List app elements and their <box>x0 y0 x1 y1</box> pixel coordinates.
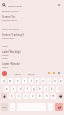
button[interactable]: f <box>25 86 30 92</box>
button[interactable]: w <box>8 78 13 84</box>
staticText: n <box>46 94 48 98</box>
button[interactable]: p <box>59 78 63 84</box>
button[interactable]: q <box>1 78 6 84</box>
button[interactable]: r <box>22 78 27 84</box>
staticText: y <box>36 79 38 83</box>
staticText: l <box>58 87 59 91</box>
button[interactable]: y <box>35 78 39 84</box>
staticText: g <box>33 87 35 91</box>
staticText: search term <box>8 4 23 7</box>
staticText: Worke <box>2 54 9 57</box>
button[interactable]: Screen Tracking S <box>0 33 64 40</box>
button[interactable]: l <box>56 86 60 92</box>
button[interactable]: i <box>47 78 51 84</box>
staticText: Screen Tracking S <box>2 33 25 37</box>
staticText: Recently Contact <box>2 10 19 13</box>
staticText: d <box>20 87 22 91</box>
button[interactable]: . <box>48 103 53 111</box>
staticText: Screen Tec <box>2 15 16 19</box>
button[interactable]: s <box>11 86 16 92</box>
staticText: Notes <box>2 45 8 48</box>
button[interactable]: o <box>53 78 57 84</box>
button[interactable]: e <box>15 78 20 84</box>
staticText: Notes <box>2 66 8 69</box>
staticText: . <box>50 105 51 109</box>
button[interactable]: Enter <box>55 103 63 111</box>
button[interactable]: c <box>23 93 28 99</box>
staticText: s <box>13 87 15 91</box>
button[interactable]: Search <box>0 0 64 10</box>
staticText: Search Resu <box>2 37 14 40</box>
staticText: v <box>32 94 34 98</box>
other: Search <box>2 3 6 7</box>
staticText: Lower Wrecke <box>2 62 20 66</box>
staticText: f <box>27 87 28 91</box>
staticText: a <box>6 87 8 91</box>
button[interactable]: Backspace <box>58 93 63 99</box>
staticText: Notes <box>2 57 8 60</box>
staticText: j <box>46 87 47 91</box>
other: Clear search <box>57 3 61 7</box>
button[interactable]: x <box>16 93 21 99</box>
staticText: , <box>12 105 13 109</box>
button[interactable]: Lower Wrecke <box>0 62 64 69</box>
button[interactable]: j <box>44 86 48 92</box>
staticText: b <box>39 94 41 98</box>
staticText: ?123 <box>2 106 7 109</box>
button[interactable]: v <box>30 93 35 99</box>
staticText: q <box>3 79 5 83</box>
button[interactable]: k <box>50 86 54 92</box>
button[interactable]: Symbols <box>1 103 8 111</box>
button[interactable]: m <box>51 93 56 99</box>
staticText: c <box>25 94 27 98</box>
button[interactable]: b <box>37 93 42 99</box>
button[interactable]: t <box>29 78 33 84</box>
button[interactable]: h <box>38 86 42 92</box>
staticText: w <box>9 79 12 83</box>
staticText: r <box>24 79 26 83</box>
button[interactable]: n <box>44 93 49 99</box>
staticText: t <box>31 79 32 83</box>
button[interactable]: u <box>41 78 45 84</box>
staticText: z <box>11 94 13 98</box>
staticText: m <box>52 94 55 98</box>
button[interactable]: terms <box>28 72 35 75</box>
button[interactable]: term <box>15 72 21 75</box>
staticText: Search in Worker <box>2 28 19 31</box>
button[interactable]: Label Workligh <box>0 50 64 57</box>
button[interactable]: Shift <box>1 93 7 99</box>
staticText: k <box>51 87 53 91</box>
button[interactable]: z <box>9 93 14 99</box>
staticText: u <box>42 79 44 83</box>
staticText: i <box>49 79 50 83</box>
button[interactable]: d <box>18 86 23 92</box>
button[interactable]: Screen Tec <box>0 15 64 22</box>
staticText: p <box>60 79 62 83</box>
button[interactable]: g <box>32 86 36 92</box>
staticText: Label Workligh <box>2 50 21 54</box>
button[interactable]: a <box>4 86 9 92</box>
staticText: x <box>18 94 20 98</box>
button[interactable]: Voice input <box>2 71 7 76</box>
staticText: o <box>54 79 56 83</box>
button[interactable]: , <box>10 103 15 111</box>
staticText: e <box>17 79 19 83</box>
staticText: h <box>39 87 41 91</box>
staticText: Recently Search <box>2 19 18 22</box>
